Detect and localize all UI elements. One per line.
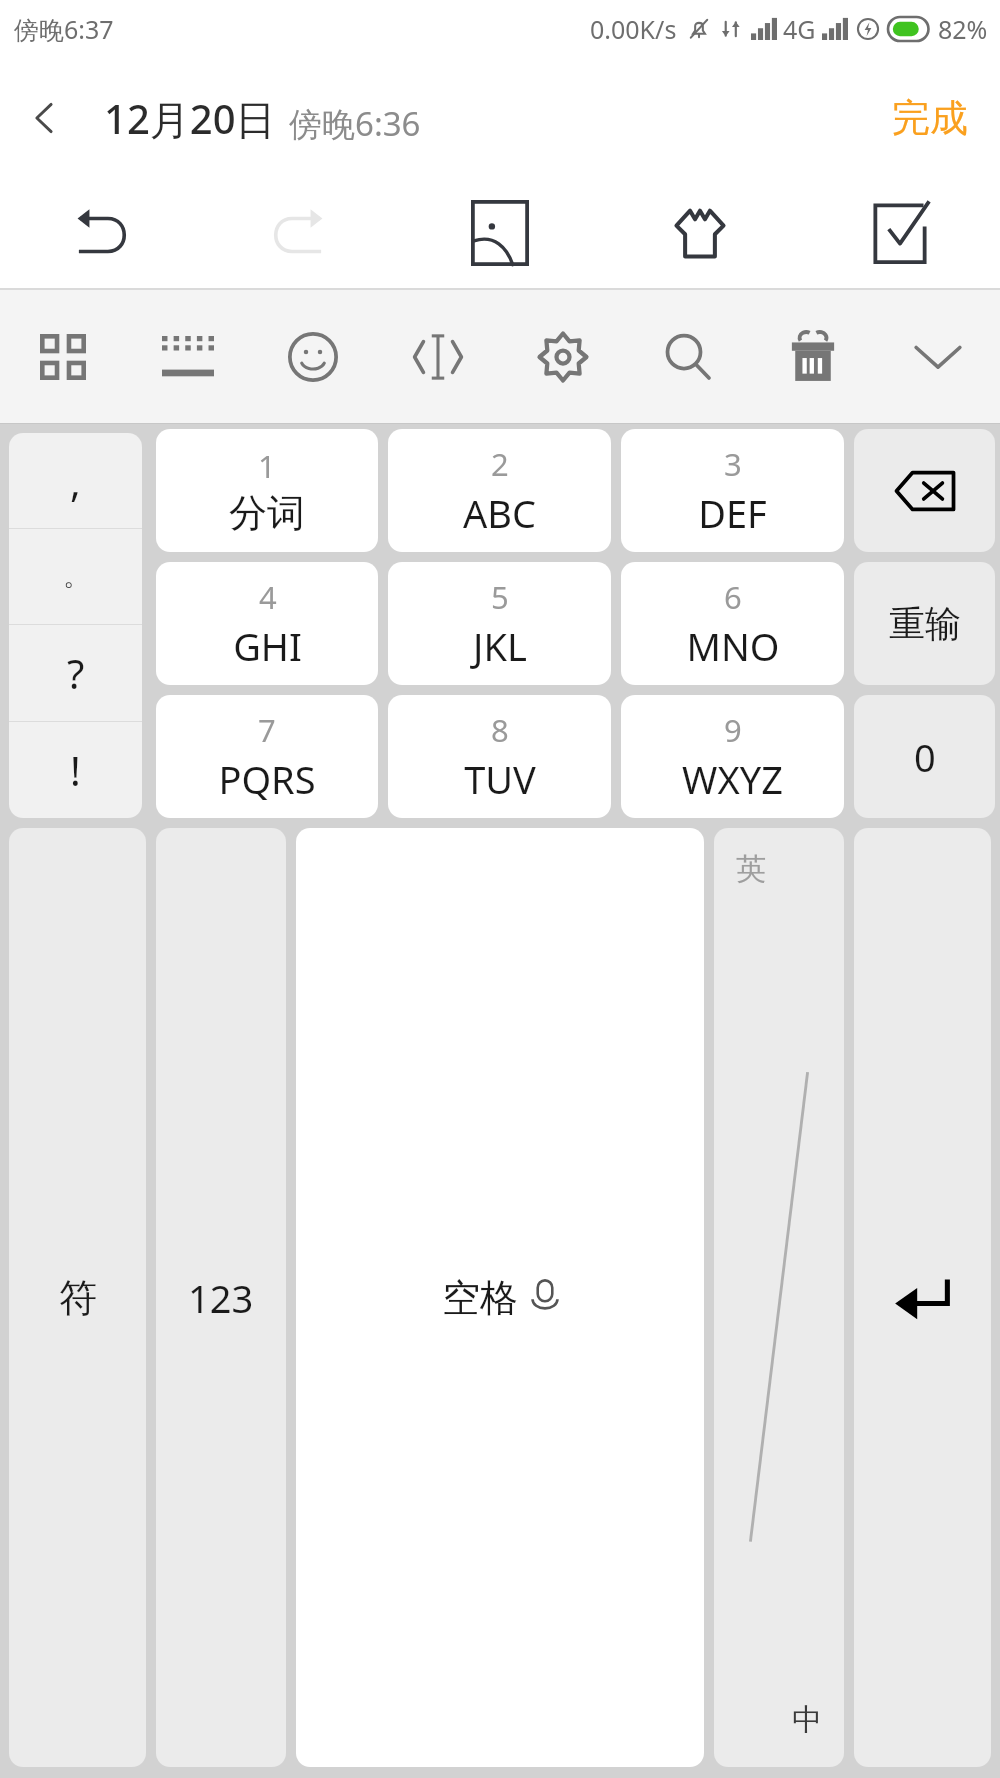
button[interactable]: 2 xyxy=(388,429,611,552)
button[interactable]: 7 xyxy=(156,695,378,818)
button[interactable]: Settings xyxy=(500,290,625,423)
button[interactable]: ! xyxy=(9,722,142,818)
button[interactable]: Checklist xyxy=(800,178,1000,288)
button[interactable]: Undo xyxy=(0,178,200,288)
button[interactable]: Back xyxy=(0,73,90,163)
staticText: 分词 xyxy=(229,489,305,537)
button[interactable]: Cursor xyxy=(375,290,500,423)
button[interactable]: 完成 xyxy=(860,76,1000,160)
staticText: 中 xyxy=(792,1701,822,1739)
staticText: 6 xyxy=(724,576,742,618)
button[interactable]: Hide keyboard xyxy=(875,290,1000,423)
staticText: 傍晚6:36 xyxy=(289,101,421,146)
staticText: 9 xyxy=(724,709,742,751)
button[interactable]: 123 xyxy=(156,828,286,1767)
staticText: ? xyxy=(67,646,85,700)
button[interactable]: ? xyxy=(9,625,142,721)
staticText: DEF xyxy=(698,487,767,539)
staticText: 。 xyxy=(63,560,89,593)
staticText: 4 xyxy=(259,576,277,618)
staticText: 8 xyxy=(491,709,509,751)
staticText: 3 xyxy=(724,443,742,485)
button[interactable]: 符 xyxy=(9,828,146,1767)
staticText: TUV xyxy=(464,753,536,805)
staticText: 82% xyxy=(938,12,988,46)
staticText: 1 xyxy=(258,445,276,487)
staticText: 0 xyxy=(914,731,936,783)
staticText: 2 xyxy=(491,443,509,485)
button[interactable]: 4 xyxy=(156,562,378,685)
staticText: ! xyxy=(70,743,81,797)
button[interactable]: 5 xyxy=(388,562,611,685)
button[interactable]: 空格 xyxy=(296,828,704,1767)
button[interactable]: Switch language xyxy=(714,828,844,1767)
staticText: WXYZ xyxy=(682,753,783,805)
staticText: 12月20日 xyxy=(104,91,276,146)
button[interactable]: 9 xyxy=(621,695,844,818)
button[interactable]: Search xyxy=(625,290,750,423)
button[interactable]: 重输 xyxy=(854,562,995,685)
staticText: 傍晚6:37 xyxy=(14,12,114,46)
button[interactable]: 1 xyxy=(156,429,378,552)
button[interactable]: 8 xyxy=(388,695,611,818)
staticText: 完成 xyxy=(892,94,968,142)
button[interactable]: Insert image xyxy=(400,178,600,288)
staticText: 重输 xyxy=(889,601,961,646)
staticText: JKL xyxy=(473,620,527,672)
staticText: 7 xyxy=(258,709,276,751)
button[interactable]: 6 xyxy=(621,562,844,685)
staticText: ABC xyxy=(463,487,536,539)
staticText: PQRS xyxy=(218,753,316,805)
button[interactable]: 0 xyxy=(854,695,995,818)
button[interactable]: , xyxy=(9,433,142,528)
button[interactable]: Keyboard layout xyxy=(125,290,250,423)
button[interactable]: Backspace xyxy=(854,429,995,552)
staticText: , xyxy=(70,454,81,508)
button[interactable]: 。 xyxy=(9,529,142,624)
staticText: MNO xyxy=(686,620,780,672)
staticText: 5 xyxy=(491,576,509,618)
staticText: 符 xyxy=(59,1274,97,1322)
staticText: 4G xyxy=(783,12,816,46)
staticText: 123 xyxy=(188,1272,254,1324)
button[interactable]: Apps xyxy=(0,290,125,423)
staticText: 空格 xyxy=(442,1274,518,1322)
staticText: GHI xyxy=(233,620,302,672)
button[interactable]: Enter xyxy=(854,828,991,1767)
button[interactable]: 3 xyxy=(621,429,844,552)
staticText: 0.00K/s xyxy=(590,12,677,46)
button[interactable]: Emoji xyxy=(250,290,375,423)
button[interactable]: Style xyxy=(600,178,800,288)
button[interactable]: Redo xyxy=(200,178,400,288)
button[interactable]: Mi store xyxy=(750,290,875,423)
staticText: 英 xyxy=(736,850,766,888)
